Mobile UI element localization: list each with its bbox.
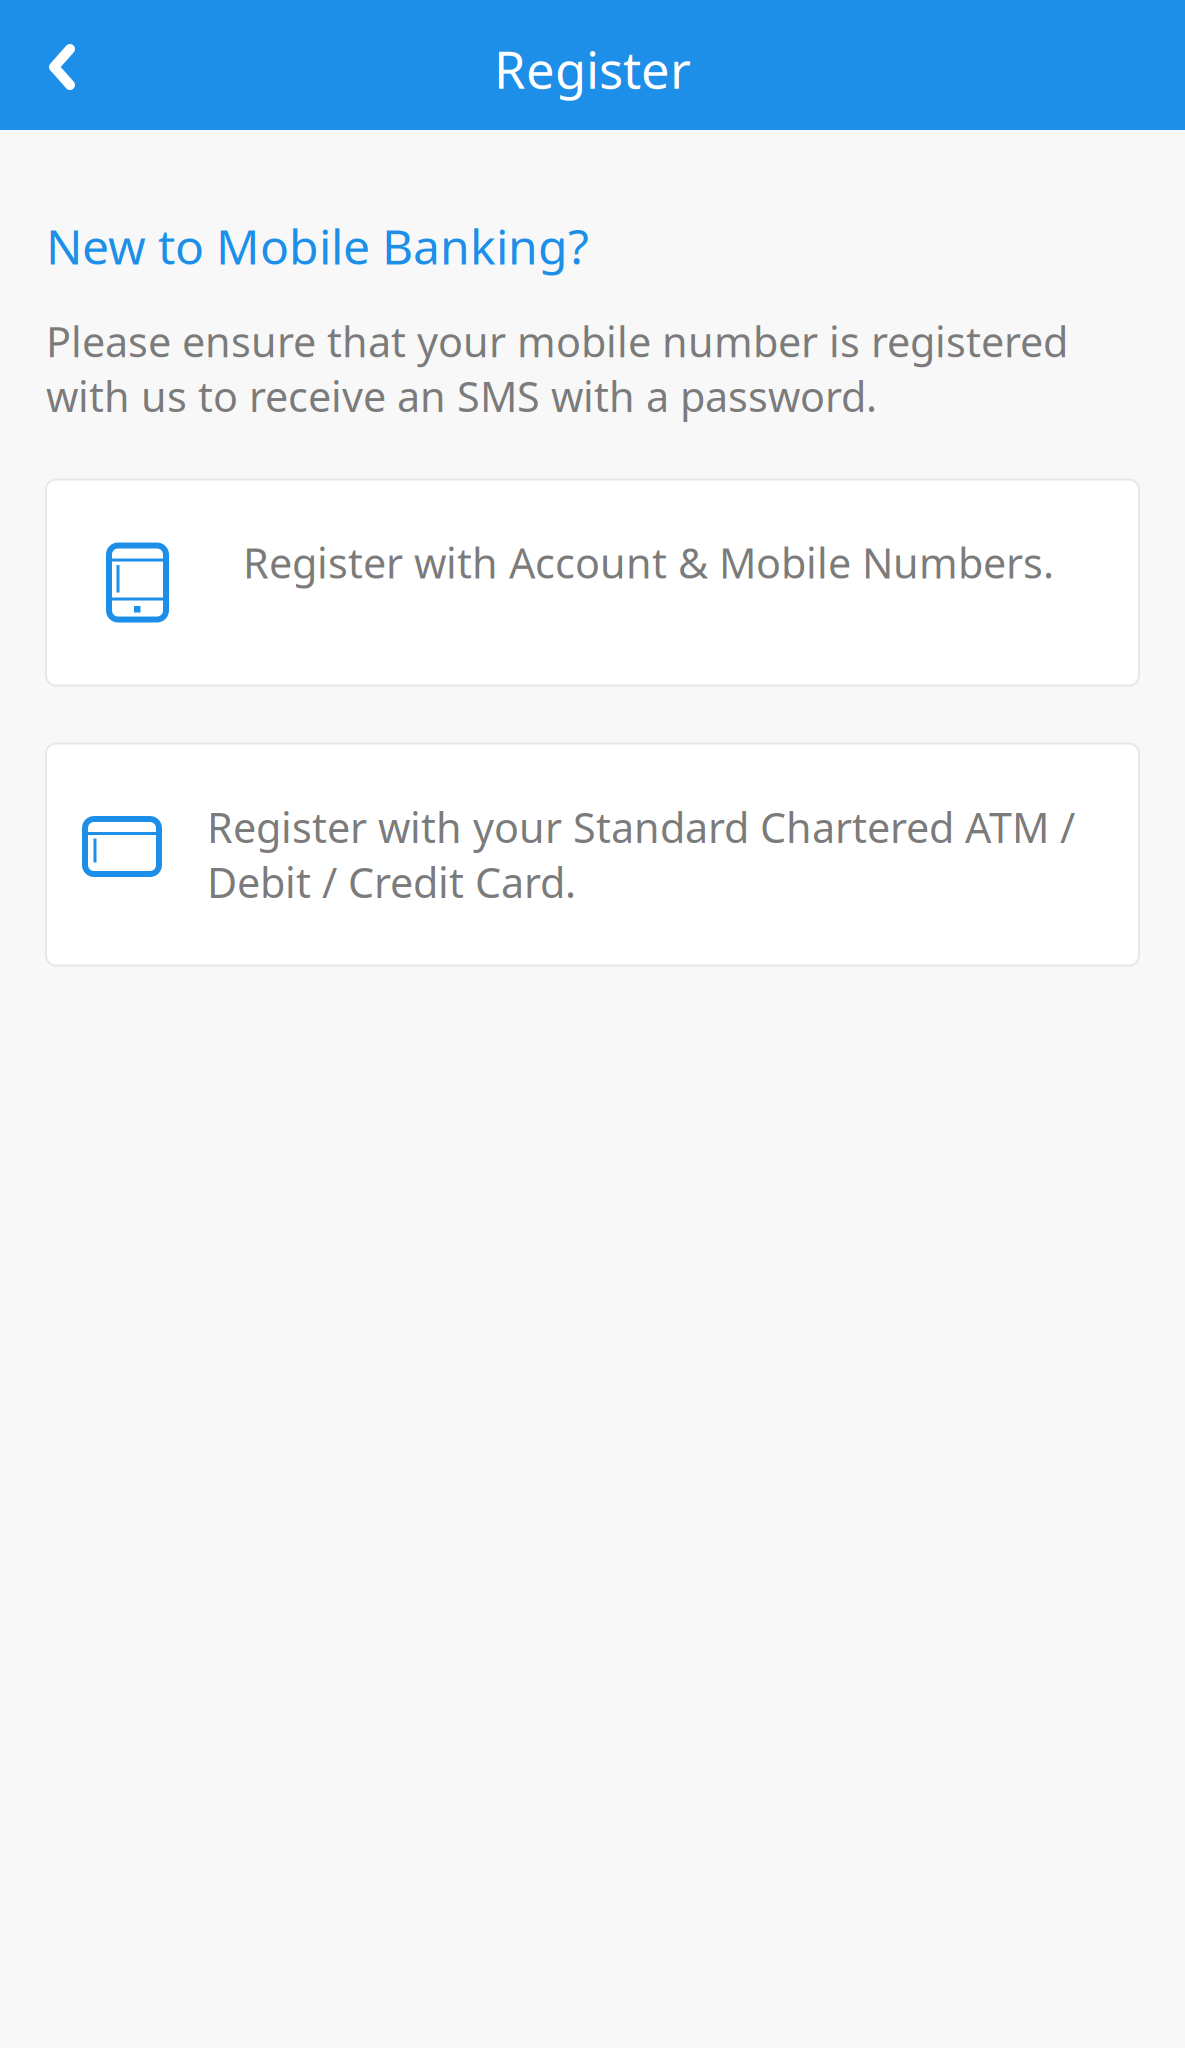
button[interactable]: Register with your Standard Chartered AT… — [46, 743, 1139, 965]
staticText: Please ensure that your mobile number is… — [46, 314, 1068, 423]
button[interactable]: Register with Account & Mobile Numbers. — [46, 479, 1139, 685]
staticText: Register with Account & Mobile Numbers. — [243, 535, 1054, 590]
staticText: New to Mobile Banking? — [46, 214, 589, 278]
staticText: Register — [494, 35, 691, 103]
staticText: Register with your Standard Chartered AT… — [207, 800, 1075, 909]
button[interactable]: Back — [0, 21, 103, 109]
